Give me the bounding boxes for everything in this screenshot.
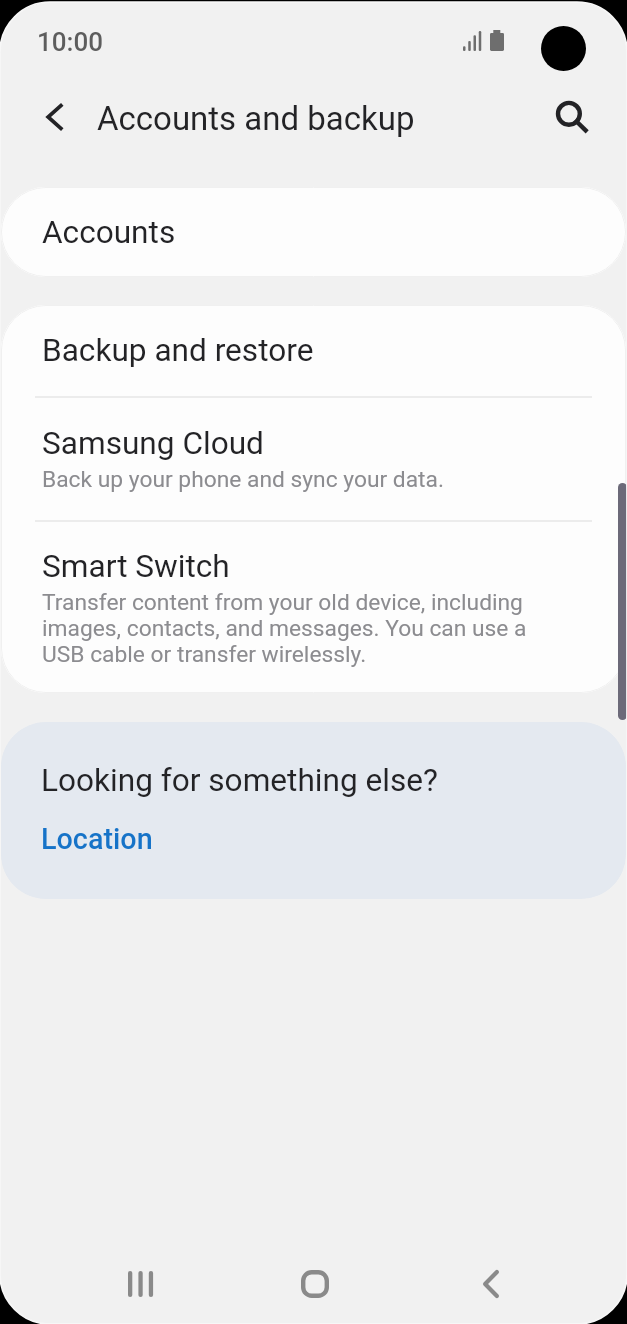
button[interactable]: Back xyxy=(451,1252,531,1316)
staticText: Backup and restore xyxy=(42,332,314,369)
staticText: 10:00 xyxy=(37,27,104,57)
staticText: Looking for something else? xyxy=(41,762,438,799)
button[interactable]: Accounts xyxy=(1,187,626,277)
staticText: Accounts and backup xyxy=(97,99,415,138)
button[interactable]: Navigate up xyxy=(32,94,78,140)
staticText: Transfer content from your old device, i… xyxy=(42,589,536,667)
button[interactable]: Location xyxy=(41,818,167,860)
staticText: Accounts xyxy=(42,214,176,251)
staticText: Smart Switch xyxy=(42,548,230,585)
staticText: Back up your phone and sync your data. xyxy=(42,466,444,492)
staticText: Location xyxy=(41,822,153,856)
button[interactable]: Search xyxy=(546,91,592,137)
button[interactable]: Recent apps xyxy=(100,1252,180,1316)
staticText: Samsung Cloud xyxy=(42,425,264,462)
button[interactable]: Home xyxy=(275,1252,355,1316)
button[interactable]: Smart Switch xyxy=(1,522,626,667)
button[interactable]: Backup and restore xyxy=(1,305,626,396)
button[interactable]: Samsung Cloud xyxy=(1,398,626,520)
